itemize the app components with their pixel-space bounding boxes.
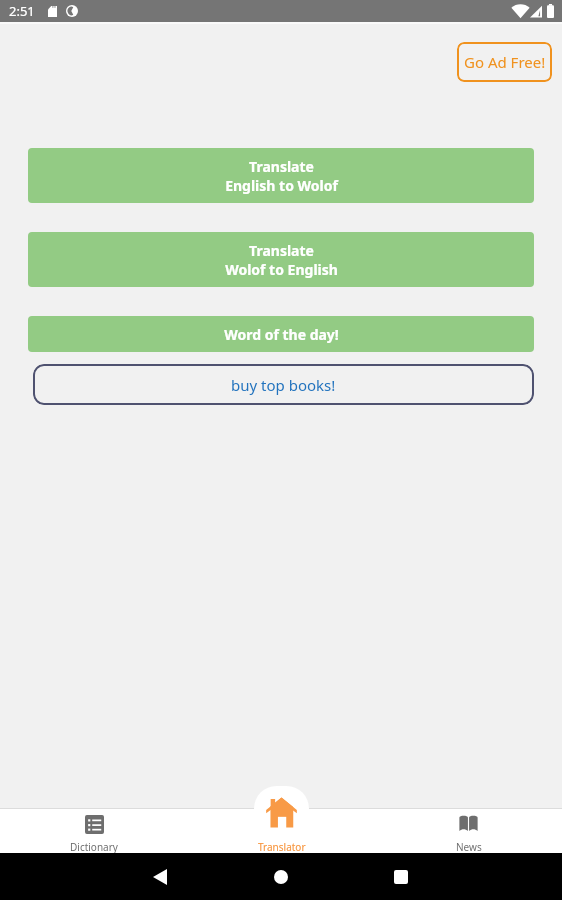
button[interactable]: Translator: [188, 808, 375, 853]
staticText: English to Wolof: [225, 176, 338, 195]
staticText: Wolof to English: [225, 260, 338, 279]
staticText: Word of the day!: [224, 325, 339, 344]
button[interactable]: Back: [140, 857, 180, 897]
button[interactable]: Dictionary: [0, 808, 188, 853]
button[interactable]: Translator: [254, 786, 309, 831]
button[interactable]: News: [375, 808, 562, 853]
staticText: Translator: [258, 840, 306, 854]
button[interactable]: Translate: [28, 232, 534, 287]
staticText: 2:51: [9, 2, 35, 20]
staticText: Translate: [249, 157, 314, 176]
button[interactable]: buy top books!: [33, 364, 534, 405]
staticText: Go Ad Free!: [464, 52, 546, 72]
staticText: Dictionary: [70, 840, 118, 854]
staticText: buy top books!: [231, 375, 336, 395]
staticText: News: [456, 840, 482, 854]
button[interactable]: Recents: [381, 857, 421, 897]
button[interactable]: Go Ad Free!: [457, 42, 552, 82]
button[interactable]: Word of the day!: [28, 316, 534, 352]
staticText: Translate: [249, 241, 314, 260]
button[interactable]: Home: [261, 857, 301, 897]
button[interactable]: Translate: [28, 148, 534, 203]
